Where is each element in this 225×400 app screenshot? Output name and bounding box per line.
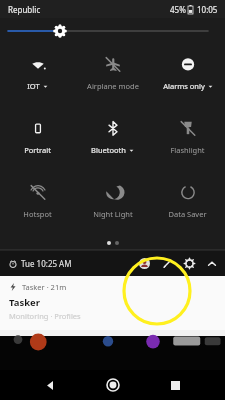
button[interactable]: Recents	[162, 372, 188, 398]
staticText: Airplane mode	[87, 81, 139, 91]
button[interactable]: Settings	[183, 257, 196, 270]
button[interactable]: Edit	[161, 257, 174, 270]
staticText: Hotspot	[23, 209, 52, 219]
button[interactable]: Collapse	[205, 257, 218, 270]
staticText: Flashlight	[170, 145, 205, 155]
staticText: Portrait	[24, 145, 51, 155]
staticText: Tue 10:25 AM	[21, 258, 72, 269]
staticText: Data Saver	[168, 209, 207, 219]
staticText: Night Light	[93, 209, 133, 219]
staticText: IOT	[27, 81, 40, 91]
button[interactable]: Night Light	[75, 172, 150, 219]
staticText: Republic	[8, 4, 41, 15]
staticText: Bluetooth	[91, 145, 126, 155]
button[interactable]: Data Saver	[150, 172, 225, 219]
staticText: 45%	[170, 4, 186, 15]
button[interactable]: Home	[100, 372, 126, 398]
button[interactable]: Portrait	[0, 108, 75, 155]
button[interactable]: User	[139, 258, 150, 269]
button[interactable]: Tue 10:25 AM	[9, 258, 72, 269]
button[interactable]: Brightness	[0, 18, 225, 44]
button[interactable]: Flashlight	[150, 108, 225, 155]
button[interactable]: Tasker · 21m	[0, 276, 225, 330]
button[interactable]: Back	[37, 372, 63, 398]
button[interactable]: Bluetooth	[75, 108, 150, 155]
staticText: 10:05	[197, 4, 218, 15]
button[interactable]: Hotspot	[0, 172, 75, 219]
button[interactable]: IOT	[0, 44, 75, 91]
button[interactable]: Alarms only	[150, 44, 225, 91]
staticText: Tasker	[9, 296, 40, 309]
staticText: Monitoring · Profiles	[9, 311, 81, 321]
button[interactable]: Airplane mode	[75, 44, 150, 91]
staticText: Tasker · 21m	[22, 282, 67, 292]
staticText: Alarms only	[163, 81, 205, 91]
